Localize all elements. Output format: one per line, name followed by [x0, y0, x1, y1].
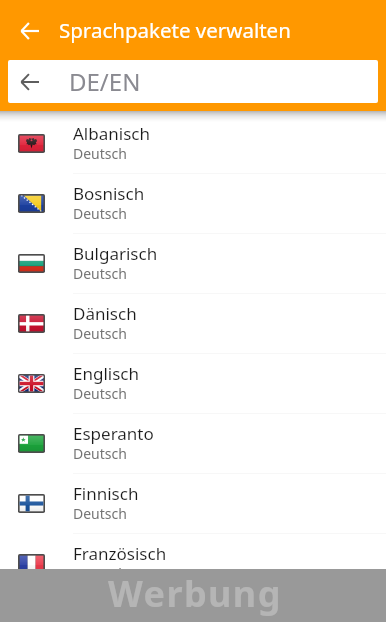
- staticText: Dänisch: [73, 302, 137, 325]
- button[interactable]: Back: [8, 60, 378, 103]
- staticText: Werbung: [108, 569, 282, 618]
- staticText: Deutsch: [73, 444, 127, 463]
- staticText: Sprachpakete verwalten: [59, 16, 291, 44]
- staticText: Albanisch: [73, 122, 150, 145]
- staticText: Englisch: [73, 362, 139, 385]
- button[interactable]: Werbung: [0, 569, 386, 622]
- staticText: Deutsch: [73, 324, 127, 343]
- button[interactable]: Back: [21, 60, 65, 103]
- button[interactable]: Finnisch: [0, 473, 386, 533]
- button[interactable]: Englisch: [0, 353, 386, 413]
- button[interactable]: Bulgarisch: [0, 233, 386, 293]
- staticText: Deutsch: [73, 564, 127, 583]
- staticText: Esperanto: [73, 422, 154, 445]
- staticText: Französisch: [73, 542, 167, 565]
- staticText: Bosnisch: [73, 182, 145, 205]
- staticText: Bulgarisch: [73, 242, 158, 265]
- button[interactable]: Albanisch: [0, 113, 386, 173]
- button[interactable]: Esperanto: [0, 413, 386, 473]
- button[interactable]: Bosnisch: [0, 173, 386, 233]
- staticText: Deutsch: [73, 264, 127, 283]
- staticText: Deutsch: [73, 504, 127, 523]
- staticText: Finnisch: [73, 482, 139, 505]
- button[interactable]: Dänisch: [0, 293, 386, 353]
- staticText: DE/EN: [69, 65, 141, 98]
- button[interactable]: Back: [0, 1, 59, 60]
- staticText: Deutsch: [73, 204, 127, 223]
- button[interactable]: Französisch: [0, 533, 386, 593]
- staticText: Deutsch: [73, 384, 127, 403]
- staticText: Deutsch: [73, 144, 127, 163]
